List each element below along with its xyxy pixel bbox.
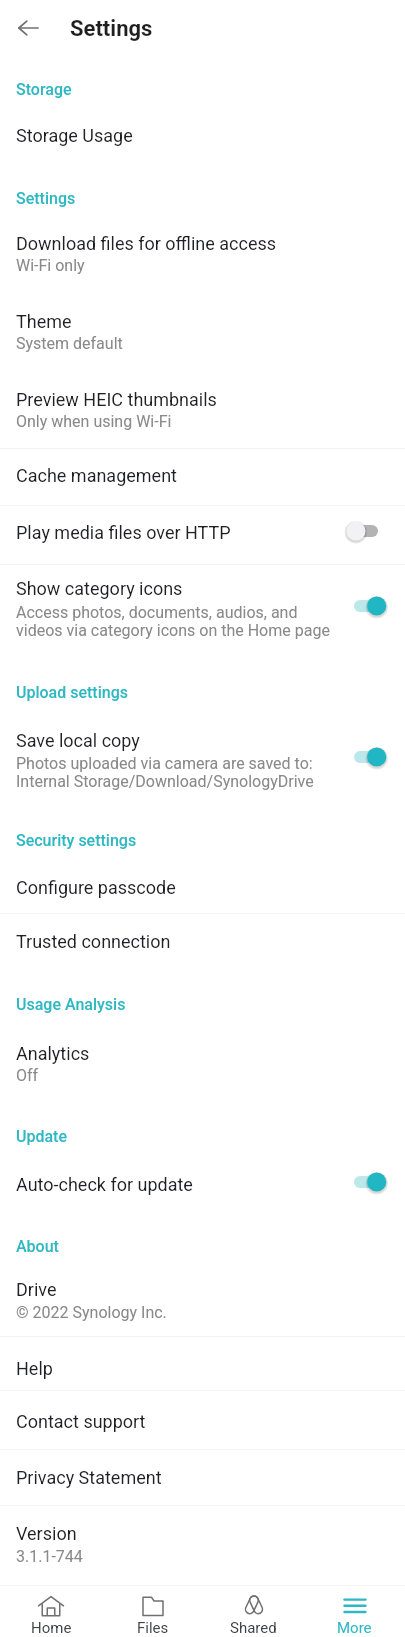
- staticText: Trusted connection: [16, 931, 171, 952]
- staticText: More: [337, 1619, 372, 1637]
- staticText: Help: [16, 1358, 53, 1379]
- button[interactable]: Cache management: [0, 449, 405, 505]
- staticText: Show category icons: [16, 578, 183, 599]
- button[interactable]: Toggle on: [354, 594, 388, 618]
- button[interactable]: Play media files over HTTP: [0, 506, 405, 564]
- staticText: Access photos, documents, audios, and vi…: [16, 603, 345, 640]
- staticText: Photos uploaded via camera are saved to:…: [16, 754, 345, 791]
- button[interactable]: Drive: [0, 1279, 405, 1336]
- button[interactable]: Toggle on: [354, 1170, 388, 1194]
- staticText: Save local copy: [16, 730, 140, 751]
- button[interactable]: Shared: [203, 1586, 304, 1637]
- button[interactable]: Back: [6, 6, 50, 50]
- button[interactable]: Version: [0, 1506, 405, 1566]
- button[interactable]: Save local copy: [0, 730, 405, 810]
- button[interactable]: Theme: [0, 311, 405, 389]
- staticText: Upload settings: [16, 683, 128, 702]
- staticText: Configure passcode: [16, 877, 176, 898]
- button[interactable]: Home: [0, 1586, 102, 1637]
- staticText: Drive: [16, 1279, 57, 1300]
- staticText: Only when using Wi-Fi: [16, 412, 172, 431]
- staticText: Play media files over HTTP: [16, 522, 231, 543]
- staticText: Storage Usage: [16, 125, 133, 146]
- staticText: Privacy Statement: [16, 1467, 162, 1488]
- button[interactable]: Analytics: [0, 1043, 405, 1106]
- staticText: Settings: [16, 189, 76, 208]
- button[interactable]: Toggle off: [354, 519, 388, 543]
- button[interactable]: Show category icons: [0, 565, 405, 683]
- staticText: Contact support: [16, 1411, 146, 1432]
- button[interactable]: Privacy Statement: [0, 1450, 405, 1505]
- button[interactable]: Storage Usage: [0, 125, 405, 175]
- button[interactable]: Download files for offline access: [0, 233, 405, 311]
- staticText: Download files for offline access: [16, 233, 277, 254]
- staticText: © 2022 Synology Inc.: [16, 1303, 167, 1322]
- button[interactable]: Toggle on: [354, 745, 388, 769]
- button[interactable]: Configure passcode: [0, 877, 405, 913]
- staticText: Theme: [16, 311, 72, 332]
- staticText: Preview HEIC thumbnails: [16, 389, 217, 410]
- staticText: Files: [137, 1619, 169, 1637]
- staticText: Cache management: [16, 465, 177, 486]
- button[interactable]: Help: [0, 1337, 405, 1390]
- staticText: About: [16, 1237, 59, 1256]
- staticText: Settings: [70, 16, 153, 42]
- staticText: 3.1.1-744: [16, 1547, 83, 1566]
- button[interactable]: Contact support: [0, 1391, 405, 1449]
- button[interactable]: Trusted connection: [0, 914, 405, 969]
- staticText: Analytics: [16, 1043, 90, 1064]
- staticText: Storage: [16, 80, 72, 99]
- staticText: Security settings: [16, 831, 137, 850]
- button[interactable]: Preview HEIC thumbnails: [0, 389, 405, 448]
- staticText: Off: [16, 1066, 39, 1085]
- button[interactable]: More: [304, 1586, 405, 1637]
- staticText: Home: [31, 1619, 72, 1637]
- button[interactable]: Files: [102, 1586, 203, 1637]
- staticText: Shared: [230, 1619, 277, 1637]
- staticText: Usage Analysis: [16, 995, 126, 1014]
- staticText: Wi-Fi only: [16, 256, 85, 275]
- staticText: Update: [16, 1127, 67, 1146]
- staticText: Auto-check for update: [16, 1174, 193, 1195]
- staticText: System default: [16, 334, 123, 353]
- button[interactable]: Auto-check for update: [0, 1174, 405, 1230]
- staticText: Version: [16, 1523, 77, 1544]
